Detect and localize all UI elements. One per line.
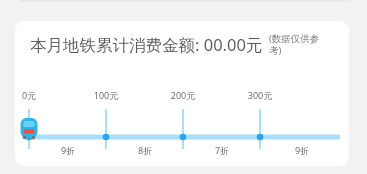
staticText: 0元: [15, 89, 54, 101]
staticText: 8折: [120, 144, 170, 156]
button[interactable]: 本月地铁累计消费金额: 00.00元: [15, 21, 349, 166]
staticText: 300元: [235, 89, 285, 101]
staticText: 本月地铁累计消费金额: 00.00元: [30, 33, 263, 56]
staticText: 9折: [43, 144, 93, 156]
staticText: 9折: [277, 144, 327, 156]
staticText: 7折: [197, 144, 247, 156]
staticText: 100元: [81, 89, 131, 101]
button[interactable]: Metro: [19, 118, 39, 138]
staticText: (数据仅供参考): [269, 32, 323, 56]
staticText: 200元: [158, 89, 208, 101]
